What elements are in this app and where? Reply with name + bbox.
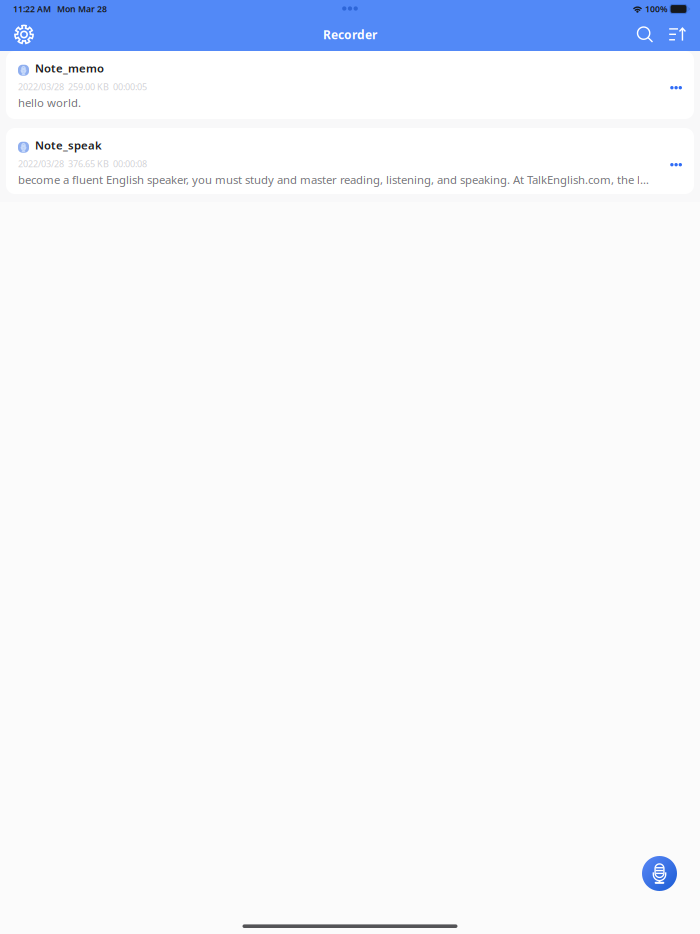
button[interactable]: Note_memo [6, 51, 694, 119]
button[interactable]: Search [629, 18, 661, 51]
button[interactable]: Record [642, 856, 677, 891]
button[interactable]: Note_speak [6, 128, 694, 194]
staticText: hello world. [18, 95, 81, 110]
button[interactable]: Settings [2, 18, 46, 51]
staticText: 2022/03/28 259.00 KB 00:00:05 [18, 80, 147, 93]
staticText: become a fluent English speaker, you mus… [18, 172, 652, 187]
staticText: 11:22 AM [13, 3, 51, 15]
staticText: Note_speak [35, 137, 102, 153]
staticText: Mon Mar 28 [51, 3, 107, 15]
staticText: 100% [643, 3, 670, 15]
button[interactable]: Sort [661, 18, 693, 51]
staticText: Note_memo [35, 60, 104, 76]
staticText: 2022/03/28 376.65 KB 00:00:08 [18, 157, 147, 170]
staticText: Recorder [323, 26, 377, 43]
